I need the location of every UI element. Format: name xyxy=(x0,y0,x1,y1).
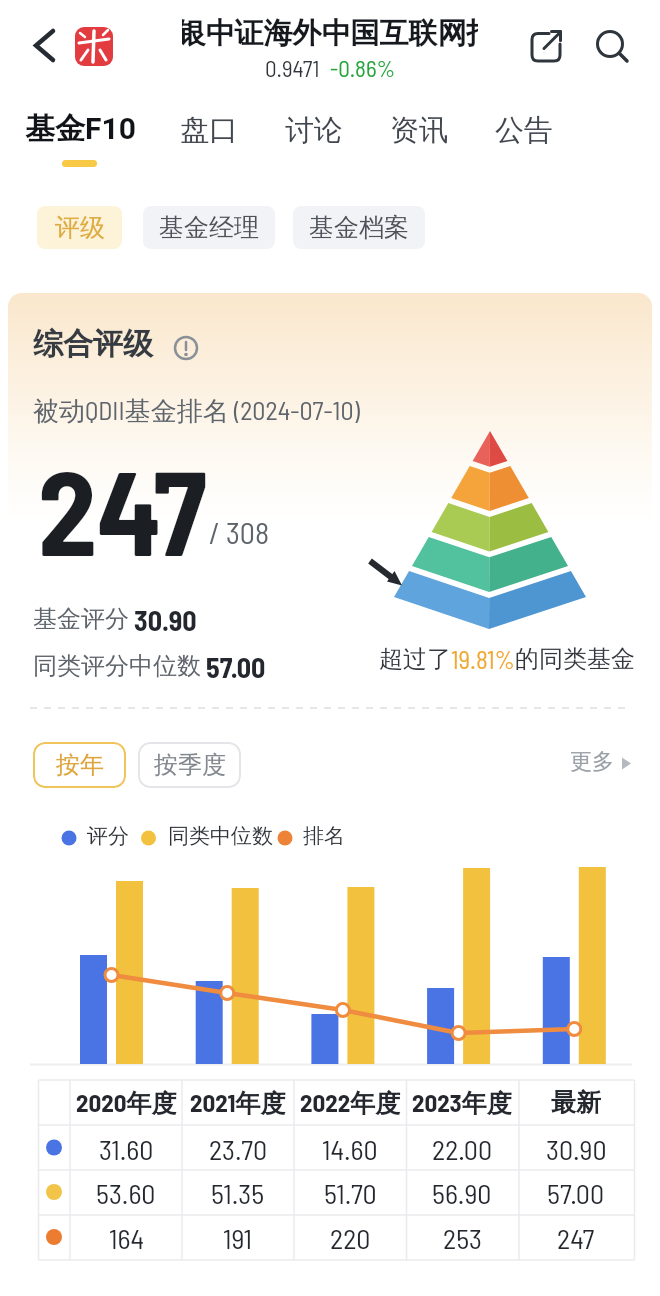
staticText: 0.9471 xyxy=(265,54,320,82)
staticText: -0.86% xyxy=(330,54,396,82)
staticText: 评级 xyxy=(55,212,105,243)
staticText: 盘口 xyxy=(180,112,238,149)
button[interactable] xyxy=(275,100,355,170)
staticText: 综合评级 xyxy=(33,325,153,363)
staticText: 最新 xyxy=(551,1087,601,1118)
staticText: 同类评分中位数 xyxy=(33,651,201,681)
staticText: 2020年度 xyxy=(76,1087,177,1119)
staticText: 讨论 xyxy=(285,112,343,149)
button[interactable]: 评级 xyxy=(37,206,122,249)
staticText: 14.60 xyxy=(322,1132,378,1166)
staticText: 按季度 xyxy=(154,750,226,780)
staticText: 31.60 xyxy=(99,1132,154,1166)
staticText: 56.90 xyxy=(432,1176,492,1210)
button[interactable] xyxy=(560,736,645,778)
staticText: 按年 xyxy=(56,750,104,780)
button[interactable]: 按年 xyxy=(33,742,126,788)
staticText: 的同类基金 xyxy=(515,644,635,674)
staticText: 资讯 xyxy=(390,112,448,149)
staticText: 51.35 xyxy=(211,1176,265,1210)
staticText: 22.00 xyxy=(432,1132,493,1166)
button[interactable]: 基金档案 xyxy=(293,206,425,249)
button[interactable] xyxy=(18,100,148,170)
staticText: 23.70 xyxy=(209,1132,268,1166)
staticText: 银中证海外中国互联网指 xyxy=(182,15,478,52)
staticText: 2021年度 xyxy=(190,1087,286,1119)
button[interactable] xyxy=(25,20,75,75)
button[interactable] xyxy=(588,20,643,75)
staticText: 253 xyxy=(443,1221,482,1255)
staticText: 基金档案 xyxy=(309,212,409,243)
staticText: 247 xyxy=(557,1221,595,1255)
staticText: 19.81% xyxy=(451,644,515,674)
staticText: 57.00 xyxy=(547,1176,605,1210)
staticText: 57.00 xyxy=(206,650,266,684)
staticText: 更多 xyxy=(570,748,614,776)
staticText: 基金F10 xyxy=(25,110,136,148)
staticText: 2023年度 xyxy=(412,1087,512,1119)
button[interactable] xyxy=(485,100,565,170)
staticText: 基金经理 xyxy=(159,212,259,243)
staticText: 30.90 xyxy=(546,1132,607,1166)
staticText: 排名 xyxy=(303,823,345,849)
staticText: 51.70 xyxy=(324,1176,377,1210)
staticText: 公告 xyxy=(495,112,553,149)
staticText: 被动QDII基金排名 (2024-07-10) xyxy=(33,394,360,428)
staticText: / 308 xyxy=(209,514,270,550)
staticText: 同类中位数 xyxy=(168,823,273,849)
button[interactable]: 按季度 xyxy=(138,742,241,788)
button[interactable] xyxy=(170,100,250,170)
staticText: 评分 xyxy=(87,823,129,849)
button[interactable] xyxy=(380,100,460,170)
button[interactable]: 基金经理 xyxy=(143,206,275,249)
button[interactable] xyxy=(520,20,575,75)
staticText: 247 xyxy=(38,438,207,580)
staticText: 30.90 xyxy=(134,603,197,637)
staticText: 2022年度 xyxy=(300,1087,401,1119)
staticText: 53.60 xyxy=(96,1176,156,1210)
staticText: 超过了 xyxy=(379,644,451,674)
staticText: 基金评分 xyxy=(33,604,129,634)
staticText: 164 xyxy=(109,1221,144,1255)
staticText: 220 xyxy=(330,1221,371,1255)
button[interactable] xyxy=(170,332,204,366)
staticText: 191 xyxy=(223,1221,253,1255)
